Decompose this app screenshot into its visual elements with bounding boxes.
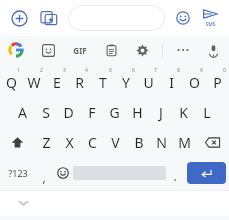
button[interactable]: G — [103, 98, 126, 127]
staticText: . — [173, 168, 177, 184]
staticText: 6 — [132, 67, 135, 74]
staticText: A — [18, 103, 27, 122]
button[interactable]: Emoji keyboard — [53, 157, 73, 189]
button[interactable]: U — [137, 66, 160, 98]
staticText: N — [156, 133, 167, 152]
button[interactable]: R — [68, 66, 91, 98]
button[interactable]: Z — [34, 127, 58, 157]
staticText: J — [159, 103, 163, 122]
button[interactable]: X — [58, 127, 81, 157]
button[interactable]: Clipboard — [96, 36, 127, 64]
button[interactable]: I — [160, 66, 183, 98]
staticText: G — [109, 103, 120, 122]
staticText: , — [42, 169, 46, 185]
button[interactable]: N — [150, 127, 173, 157]
staticText: 9 — [200, 67, 203, 74]
button[interactable]: L — [195, 98, 218, 127]
staticText: SMS — [205, 21, 216, 28]
staticText: 2 — [40, 67, 43, 74]
staticText: K — [179, 103, 188, 122]
staticText: M — [178, 133, 191, 152]
staticText: GIF — [73, 45, 87, 56]
button[interactable]: ?123 — [0, 157, 35, 189]
button[interactable]: , — [35, 157, 53, 189]
staticText: 0 — [223, 67, 226, 74]
button[interactable]: Settings — [127, 36, 158, 64]
staticText: O — [189, 73, 200, 92]
button[interactable]: O — [183, 66, 206, 98]
button[interactable]: T — [91, 66, 114, 98]
staticText: 5 — [109, 67, 112, 74]
button[interactable] — [68, 5, 165, 31]
staticText: L — [203, 103, 211, 122]
button[interactable]: Send SMS — [197, 3, 223, 33]
button[interactable]: Q — [0, 66, 22, 98]
staticText: I — [169, 73, 174, 92]
staticText: P — [213, 73, 222, 92]
button[interactable]: Add attachment — [6, 5, 32, 31]
button[interactable]: E — [45, 66, 68, 98]
staticText: 3 — [63, 67, 66, 74]
staticText: R — [75, 73, 84, 92]
button[interactable]: Hide keyboard — [13, 193, 33, 213]
button[interactable]: M — [173, 127, 196, 157]
button[interactable]: C — [81, 127, 104, 157]
staticText: S — [42, 103, 50, 122]
button[interactable]: P — [206, 66, 229, 98]
staticText: T — [99, 73, 107, 92]
button[interactable]: S — [34, 98, 57, 127]
button[interactable]: GIF — [64, 36, 96, 64]
button[interactable]: Backspace — [196, 127, 229, 157]
staticText: ?123 — [8, 167, 28, 179]
button[interactable]: W — [22, 66, 45, 98]
staticText: 4 — [85, 67, 88, 74]
button[interactable]: H — [126, 98, 149, 127]
button[interactable]: K — [172, 98, 195, 127]
button[interactable]: Enter — [187, 162, 226, 184]
button[interactable]: . — [166, 157, 184, 189]
button[interactable]: A — [11, 98, 34, 127]
staticText: W — [27, 73, 41, 92]
button[interactable]: More options — [167, 36, 198, 64]
button[interactable]: Emoji — [171, 6, 195, 30]
staticText: Q — [6, 73, 17, 92]
staticText: V — [111, 133, 120, 152]
button[interactable]: Google — [0, 36, 32, 64]
button[interactable]: D — [57, 98, 80, 127]
button[interactable]: Voice input — [198, 36, 229, 64]
staticText: 1 — [17, 67, 20, 74]
button[interactable]: F — [80, 98, 103, 127]
staticText: D — [63, 103, 74, 122]
button[interactable]: Y — [114, 66, 137, 98]
button[interactable]: J — [149, 98, 172, 127]
staticText: E — [53, 73, 61, 92]
staticText: H — [132, 103, 143, 122]
staticText: U — [143, 73, 154, 92]
staticText: 7 — [154, 67, 157, 74]
staticText: Y — [122, 73, 130, 92]
staticText: B — [134, 133, 144, 152]
staticText: C — [88, 133, 97, 152]
button[interactable]: B — [127, 127, 150, 157]
button[interactable]: V — [104, 127, 127, 157]
staticText: Z — [42, 133, 51, 152]
button[interactable]: Shift — [0, 127, 34, 157]
staticText: X — [65, 133, 74, 152]
button[interactable]: Camera and gallery — [36, 5, 62, 31]
staticText: F — [88, 103, 96, 122]
button[interactable]: Stickers — [32, 36, 64, 64]
staticText: 8 — [177, 67, 180, 74]
